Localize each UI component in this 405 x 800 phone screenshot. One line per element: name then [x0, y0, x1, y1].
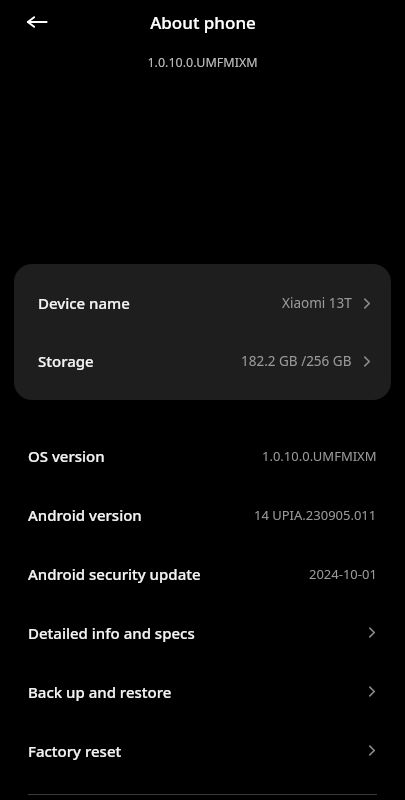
- staticText: Back up and restore: [28, 682, 172, 702]
- button[interactable]: OS version: [0, 426, 405, 485]
- staticText: Xiaomi 13T: [282, 294, 352, 312]
- button[interactable]: Back up and restore: [0, 662, 405, 721]
- staticText: 2024-10-01: [309, 565, 377, 583]
- staticText: Device name: [38, 293, 130, 313]
- staticText: Android version: [28, 505, 142, 525]
- staticText: OS version: [28, 446, 105, 466]
- button[interactable]: Android security update: [0, 544, 405, 603]
- staticText: 1.0.10.0.UMFMIXM: [147, 54, 258, 71]
- staticText: About phone: [150, 11, 256, 34]
- staticText: 1.0.10.0.UMFMIXM: [262, 447, 377, 465]
- staticText: 182.2 GB /256 GB: [241, 352, 352, 370]
- button[interactable]: Detailed info and specs: [0, 603, 405, 662]
- staticText: Storage: [38, 351, 94, 371]
- staticText: 14 UPIA.230905.011: [254, 506, 377, 524]
- button[interactable]: Factory reset: [0, 721, 405, 780]
- button[interactable]: Device name: [14, 274, 391, 332]
- staticText: Factory reset: [28, 741, 122, 761]
- button[interactable]: Android version: [0, 485, 405, 544]
- button[interactable]: Back: [18, 3, 56, 41]
- staticText: Detailed info and specs: [28, 623, 195, 643]
- staticText: Android security update: [28, 564, 201, 584]
- button[interactable]: Storage: [14, 332, 391, 390]
